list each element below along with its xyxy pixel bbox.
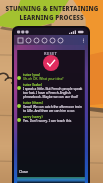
staticText: tutor (babe)	[23, 83, 43, 87]
staticText: I speak a little. But French people spea…	[23, 87, 85, 99]
staticText: Uh-oh OK. What your idea?	[23, 77, 64, 81]
button[interactable]: More options	[79, 36, 87, 44]
button[interactable]: Tool 6	[56, 36, 64, 44]
button[interactable]: tutor (them)	[17, 101, 85, 113]
staticText: LEARNING PROCESS	[19, 13, 84, 21]
button[interactable]: sorry (sorry)	[17, 115, 85, 123]
button[interactable]: Tool 4	[40, 36, 48, 44]
button[interactable]: Tool 1	[16, 36, 24, 44]
button[interactable]: Tool 5	[48, 36, 56, 44]
button[interactable]: tutor (babe)	[17, 83, 85, 99]
staticText: Great! We can catch the afternoon train …	[23, 105, 85, 113]
button[interactable]: Close	[14, 168, 88, 177]
staticText: tutor (you)	[23, 73, 41, 77]
staticText: STUNNING & ENTERTAINING	[5, 4, 99, 12]
button[interactable]	[14, 177, 88, 183]
staticText: sorry (sorry)	[23, 115, 43, 119]
staticText: RESET	[44, 51, 58, 56]
button[interactable]: tutor (you)	[17, 73, 85, 81]
button[interactable]: Tool 3	[32, 36, 40, 44]
staticText: Close	[19, 169, 29, 174]
staticText: Yes. Don't worry. I can teach this	[23, 119, 72, 123]
button[interactable]: Confirm	[43, 55, 59, 71]
button[interactable]: Tool 2	[24, 36, 32, 44]
staticText: tutor (them)	[23, 101, 43, 105]
